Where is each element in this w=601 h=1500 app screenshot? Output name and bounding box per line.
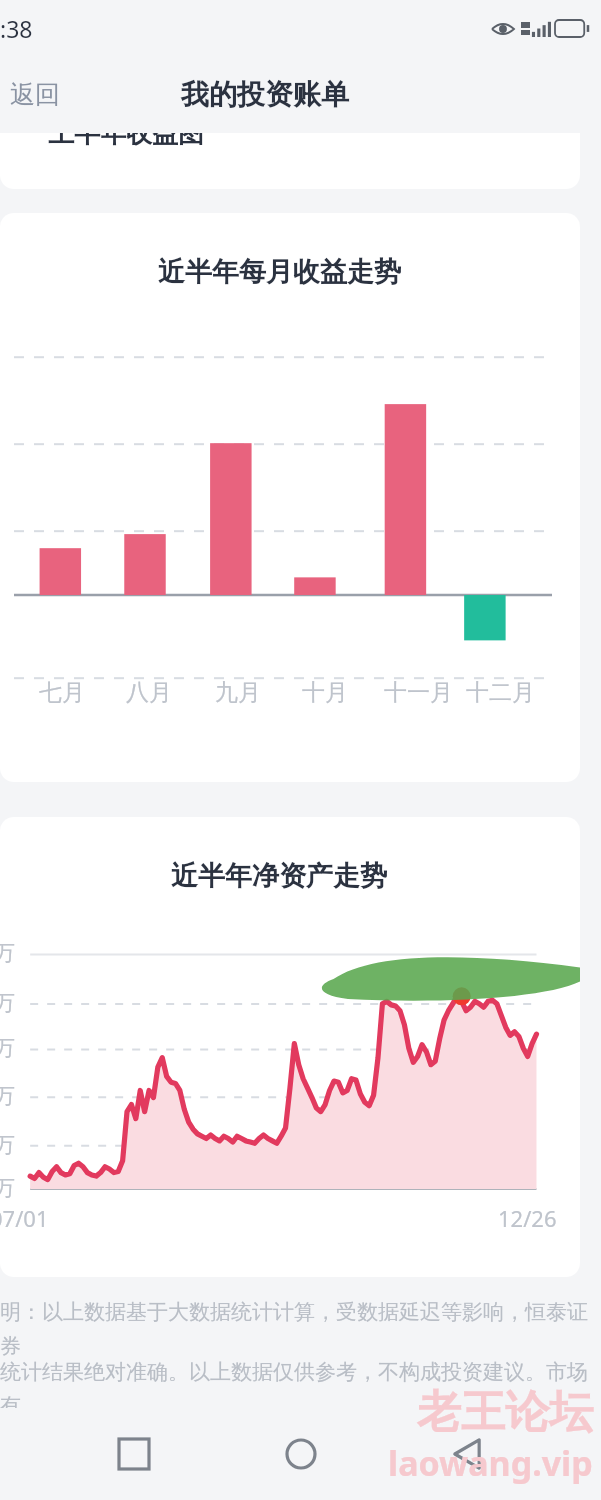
staticText: :38: [0, 13, 33, 44]
staticText: 万: [0, 1083, 15, 1109]
staticText: 十二月: [466, 678, 535, 707]
button[interactable]: Back: [435, 1422, 499, 1486]
staticText: 万: [0, 1035, 15, 1061]
staticText: 老王论坛: [417, 1385, 593, 1440]
staticText: laowang.vip: [388, 1440, 593, 1486]
staticText: 我的投资账单: [181, 77, 349, 112]
button[interactable]: Home: [269, 1422, 333, 1486]
staticText: 返回: [10, 79, 60, 110]
button[interactable]: 返回: [0, 71, 70, 118]
button[interactable]: Recent apps: [102, 1422, 166, 1486]
staticText: 十一月: [384, 678, 453, 707]
staticText: 九月: [215, 678, 261, 707]
staticText: 上半年收益图: [48, 133, 204, 150]
staticText: 八月: [126, 678, 172, 707]
staticText: 十月: [302, 678, 348, 707]
staticText: 近半年每月收益走势: [158, 255, 401, 289]
staticText: 07/01: [0, 1203, 49, 1233]
staticText: 万: [0, 990, 15, 1016]
staticText: 近半年净资产走势: [171, 859, 387, 893]
staticText: 统计结果绝对准确。以上数据仅供参考，不构成投资建议。市场有: [0, 1359, 589, 1408]
staticText: 万: [0, 1175, 15, 1201]
staticText: 万: [0, 1132, 15, 1158]
button[interactable]: 近半年每月收益走势: [0, 213, 580, 782]
staticText: 七月: [39, 678, 85, 707]
button[interactable]: 上半年收益图: [0, 133, 580, 189]
button[interactable]: 近半年净资产走势: [0, 817, 580, 1277]
staticText: 明：以上数据基于大数据统计计算，受数据延迟等影响，恒泰证券: [0, 1299, 589, 1359]
staticText: 12/26: [498, 1203, 557, 1233]
staticText: 万: [0, 940, 15, 966]
